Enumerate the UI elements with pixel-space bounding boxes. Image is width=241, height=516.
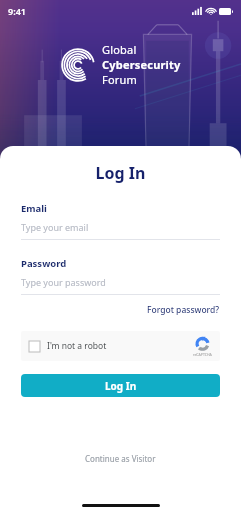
button[interactable]: I'm not a robot checkbox bbox=[21, 331, 220, 361]
staticText: reCAPTCHA bbox=[193, 352, 212, 357]
button[interactable]: Log In bbox=[21, 374, 220, 397]
staticText: Log In bbox=[105, 379, 137, 393]
staticText: I'm not a robot bbox=[47, 340, 107, 352]
button[interactable]: Continue as Visitor bbox=[79, 447, 162, 470]
button[interactable]: Type your password bbox=[21, 276, 220, 295]
staticText: Cybersecurity bbox=[102, 57, 181, 72]
staticText: Password bbox=[21, 257, 67, 270]
staticText: Continue as Visitor bbox=[85, 453, 156, 464]
other: I'm not a robot checkbox bbox=[29, 341, 40, 352]
button[interactable]: Type your email bbox=[21, 221, 220, 240]
staticText: Log In bbox=[21, 162, 220, 184]
staticText: 9:41 bbox=[8, 5, 26, 17]
staticText: Forum bbox=[102, 72, 137, 87]
staticText: Global bbox=[102, 42, 137, 57]
button[interactable]: Forgot password? bbox=[147, 302, 220, 318]
staticText: Forgot password? bbox=[147, 304, 220, 316]
staticText: Type your email bbox=[21, 221, 89, 233]
staticText: Emali bbox=[21, 202, 47, 215]
staticText: Type your password bbox=[21, 276, 106, 288]
